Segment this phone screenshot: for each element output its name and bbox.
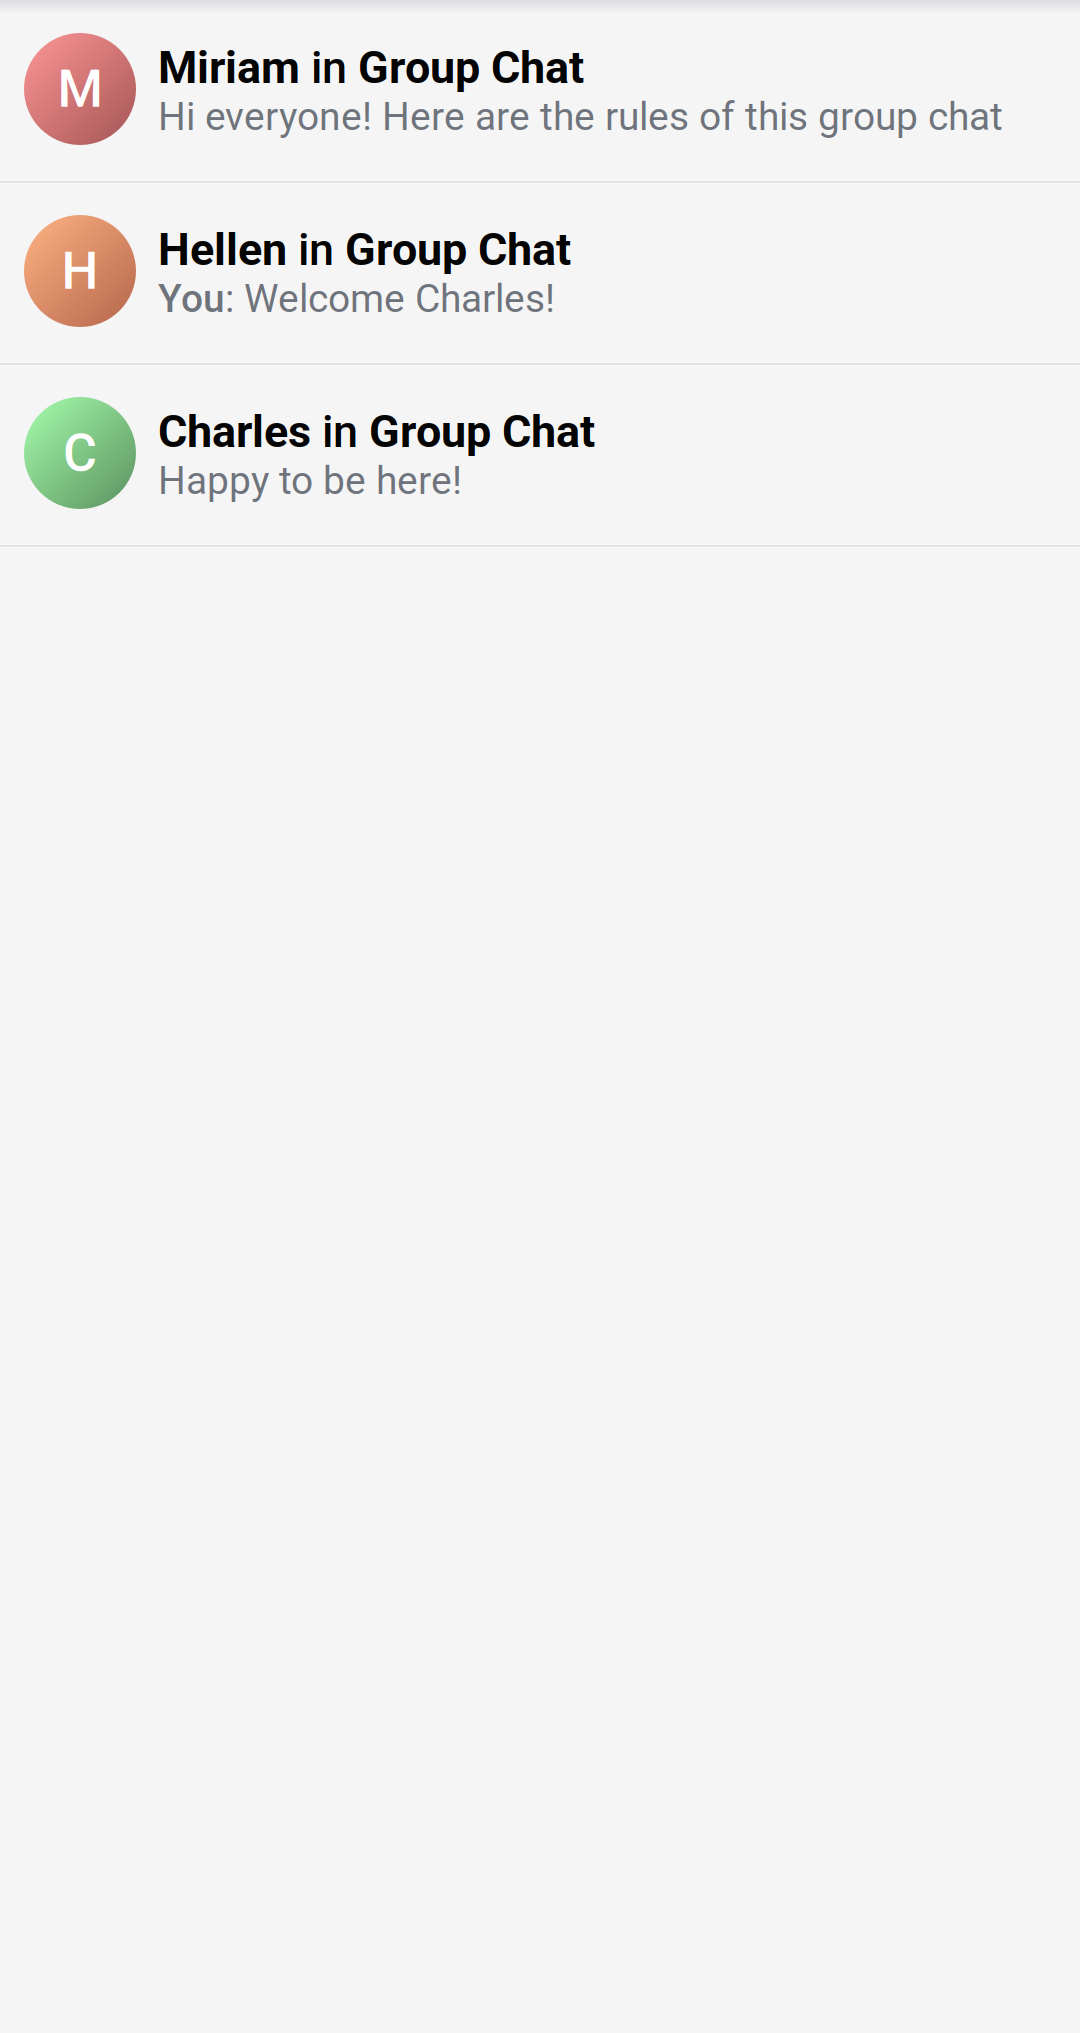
- staticText: Miriam in Group Chat: [158, 42, 584, 93]
- staticText: M: [57, 58, 102, 119]
- button[interactable]: H: [0, 182, 1080, 364]
- staticText: You: Welcome Charles!: [158, 276, 555, 321]
- button[interactable]: C: [0, 364, 1080, 546]
- staticText: C: [63, 422, 97, 483]
- staticText: H: [61, 240, 98, 301]
- staticText: Hi everyone! Here are the rules of this …: [158, 94, 1003, 139]
- staticText: Charles in Group Chat: [158, 406, 595, 457]
- staticText: Happy to be here!: [158, 458, 462, 503]
- staticText: Hellen in Group Chat: [158, 224, 571, 275]
- button[interactable]: M: [0, 0, 1080, 182]
